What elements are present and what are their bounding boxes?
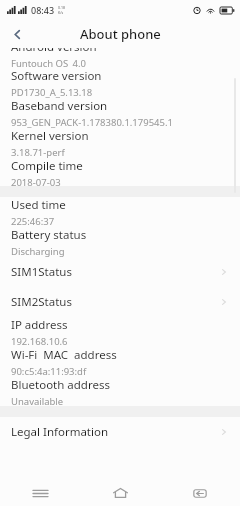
staticText: 0.18: [58, 5, 65, 10]
staticText: Legal Information: [11, 424, 109, 440]
button[interactable]: SIM2Status: [0, 287, 240, 317]
staticText: 90:c5:4a:11:93:df: [11, 365, 87, 377]
staticText: K/s: [58, 10, 64, 15]
staticText: SIM2Status: [11, 294, 72, 310]
button[interactable]: Baseband version: [0, 98, 240, 128]
staticText: 08:43: [31, 4, 55, 16]
staticText: 2018-07-03: [11, 176, 61, 186]
staticText: PD1730_A_5.13.18: [11, 86, 93, 98]
button[interactable]: Kernel version: [0, 128, 240, 158]
staticText: Unavailable: [11, 395, 64, 406]
staticText: 953_GEN_PACK-1.178380.1.179545.1: [11, 116, 173, 128]
staticText: Bluetooth address: [11, 377, 110, 393]
button[interactable]: Legal Information: [0, 417, 240, 447]
staticText: About phone: [80, 25, 161, 43]
button[interactable]: Home: [80, 480, 160, 506]
button[interactable]: Bluetooth address: [0, 377, 240, 406]
staticText: Discharging: [11, 245, 65, 257]
staticText: Android version: [11, 48, 97, 55]
button[interactable]: IP address: [0, 317, 240, 347]
staticText: Software version: [11, 68, 102, 84]
staticText: Baseband version: [11, 98, 108, 114]
staticText: SIM1Status: [11, 264, 72, 280]
button[interactable]: Software version: [0, 68, 240, 98]
button[interactable]: Battery status: [0, 227, 240, 257]
staticText: 225:46:37: [11, 215, 55, 227]
button[interactable]: Wi-Fi MAC address: [0, 347, 240, 377]
staticText: Compile time: [11, 158, 83, 174]
staticText: Wi-Fi MAC address: [11, 347, 117, 363]
button[interactable]: Back: [160, 480, 240, 506]
staticText: 192.168.10.6: [11, 335, 68, 347]
staticText: Used time: [11, 197, 66, 213]
button[interactable]: Recent apps: [0, 480, 80, 506]
staticText: Kernel version: [11, 128, 89, 144]
button[interactable]: Android version: [0, 48, 240, 68]
button[interactable]: Compile time: [0, 158, 240, 186]
button[interactable]: Used time: [0, 197, 240, 227]
staticText: 3.18.71-perf: [11, 146, 65, 158]
staticText: Battery status: [11, 227, 87, 243]
staticText: IP address: [11, 317, 68, 333]
staticText: Funtouch OS_4.0: [11, 57, 86, 68]
button[interactable]: SIM1Status: [0, 257, 240, 287]
button[interactable]: Back: [5, 22, 29, 46]
